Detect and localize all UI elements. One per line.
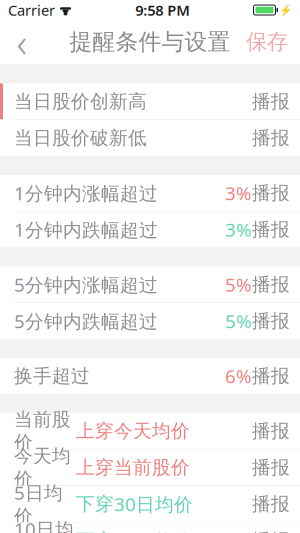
staticText: 播报	[252, 126, 290, 149]
staticText: 上穿	[76, 419, 114, 442]
button[interactable]: 10日均价	[0, 522, 300, 533]
staticText: 3%	[225, 217, 252, 242]
staticText: 6%	[225, 364, 252, 388]
staticText: 3%	[225, 181, 252, 205]
staticText: 上穿	[76, 456, 114, 479]
staticText: 下穿	[76, 529, 114, 533]
staticText: 播报	[252, 218, 290, 241]
button[interactable]: 当日股价破新低	[0, 120, 300, 156]
staticText: 当前股价	[114, 456, 190, 479]
staticText: 今天均价	[14, 445, 71, 490]
staticText: 播报	[252, 529, 290, 533]
staticText: 1分钟内跌幅超过	[14, 217, 158, 242]
staticText: 今天均价	[114, 419, 190, 442]
button[interactable]: 5日均价	[0, 486, 300, 522]
staticText: 5分钟内涨幅超过	[14, 272, 158, 297]
button[interactable]: 1分钟内涨幅超过	[0, 175, 300, 211]
button[interactable]: 今天均价	[0, 449, 300, 485]
button[interactable]: 换手超过	[0, 358, 300, 394]
staticText: 10日均价	[14, 517, 74, 533]
staticText: ⚡	[279, 4, 292, 16]
button[interactable]: 1分钟内跌幅超过	[0, 211, 300, 247]
button[interactable]: 当前股价	[0, 413, 300, 449]
staticText: Carrier	[8, 0, 55, 20]
staticText: 下穿	[76, 492, 114, 515]
staticText: 播报	[252, 456, 290, 479]
staticText: 当前股价	[14, 408, 71, 454]
staticText: 1分钟内涨幅超过	[14, 181, 158, 205]
button[interactable]: 保存	[234, 20, 300, 64]
staticText: 5%	[225, 272, 252, 297]
staticText: 提醒条件与设置	[69, 28, 230, 56]
staticText: 5日均价	[14, 480, 63, 528]
button[interactable]: 5分钟内涨幅超过	[0, 266, 300, 302]
staticText: 播报	[252, 492, 290, 515]
staticText: 播报	[252, 90, 290, 113]
staticText: ‹	[16, 15, 27, 68]
staticText: 换手超过	[14, 364, 90, 387]
staticText: 5分钟内跌幅超过	[14, 309, 158, 333]
staticText: 播报	[252, 273, 290, 296]
staticText: 播报	[252, 181, 290, 204]
staticText: 当日股价创新高	[14, 90, 147, 113]
button[interactable]: 当日股价创新高	[0, 83, 300, 119]
staticText: 保存	[246, 29, 288, 55]
button[interactable]: Back	[0, 20, 44, 64]
staticText: 播报	[252, 364, 290, 387]
staticText: 9:58 PM	[135, 0, 190, 20]
button[interactable]: 5分钟内跌幅超过	[0, 303, 300, 339]
staticText: 当日股价破新低	[14, 126, 147, 149]
staticText: 播报	[252, 419, 290, 442]
staticText: 播报	[252, 309, 290, 332]
staticText: 5%	[225, 309, 252, 333]
staticText: 30日均价	[114, 528, 193, 533]
staticText: 30日均价	[114, 492, 193, 516]
